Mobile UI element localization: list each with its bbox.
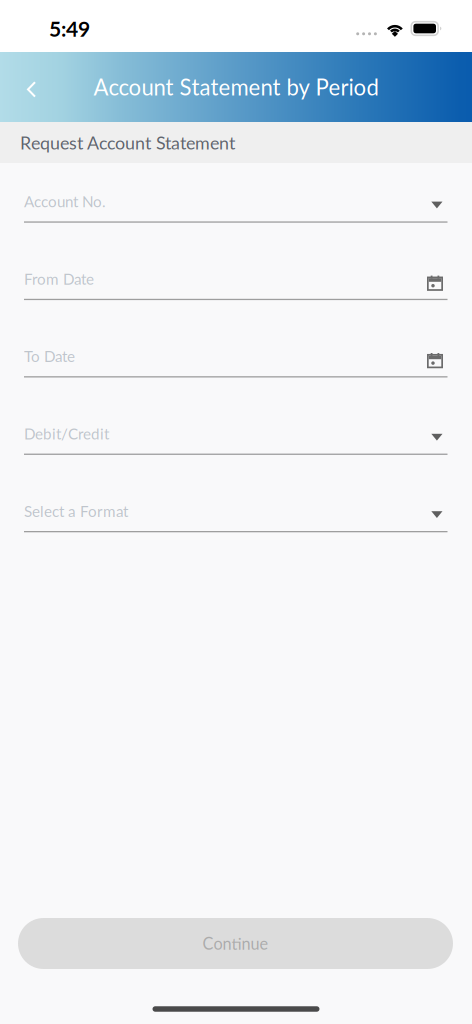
staticText: Select a Format	[24, 502, 128, 520]
staticText: From Date	[24, 270, 94, 288]
staticText: To Date	[24, 347, 75, 365]
button[interactable]: From Date	[0, 240, 472, 318]
button[interactable]: Back	[11, 65, 55, 109]
button[interactable]: Select a Format	[0, 473, 472, 550]
staticText: Request Account Statement	[20, 132, 235, 153]
button[interactable]: Account No.	[0, 163, 472, 240]
button[interactable]: To Date	[0, 318, 472, 395]
staticText: Account Statement by Period	[93, 74, 378, 100]
staticText: Account No.	[24, 192, 106, 210]
button[interactable]: Continue	[18, 918, 453, 969]
staticText: 5:49	[49, 16, 90, 41]
staticText: Continue	[202, 934, 268, 953]
staticText: Debit/Credit	[24, 424, 109, 443]
button[interactable]: Debit/Credit	[0, 395, 472, 473]
